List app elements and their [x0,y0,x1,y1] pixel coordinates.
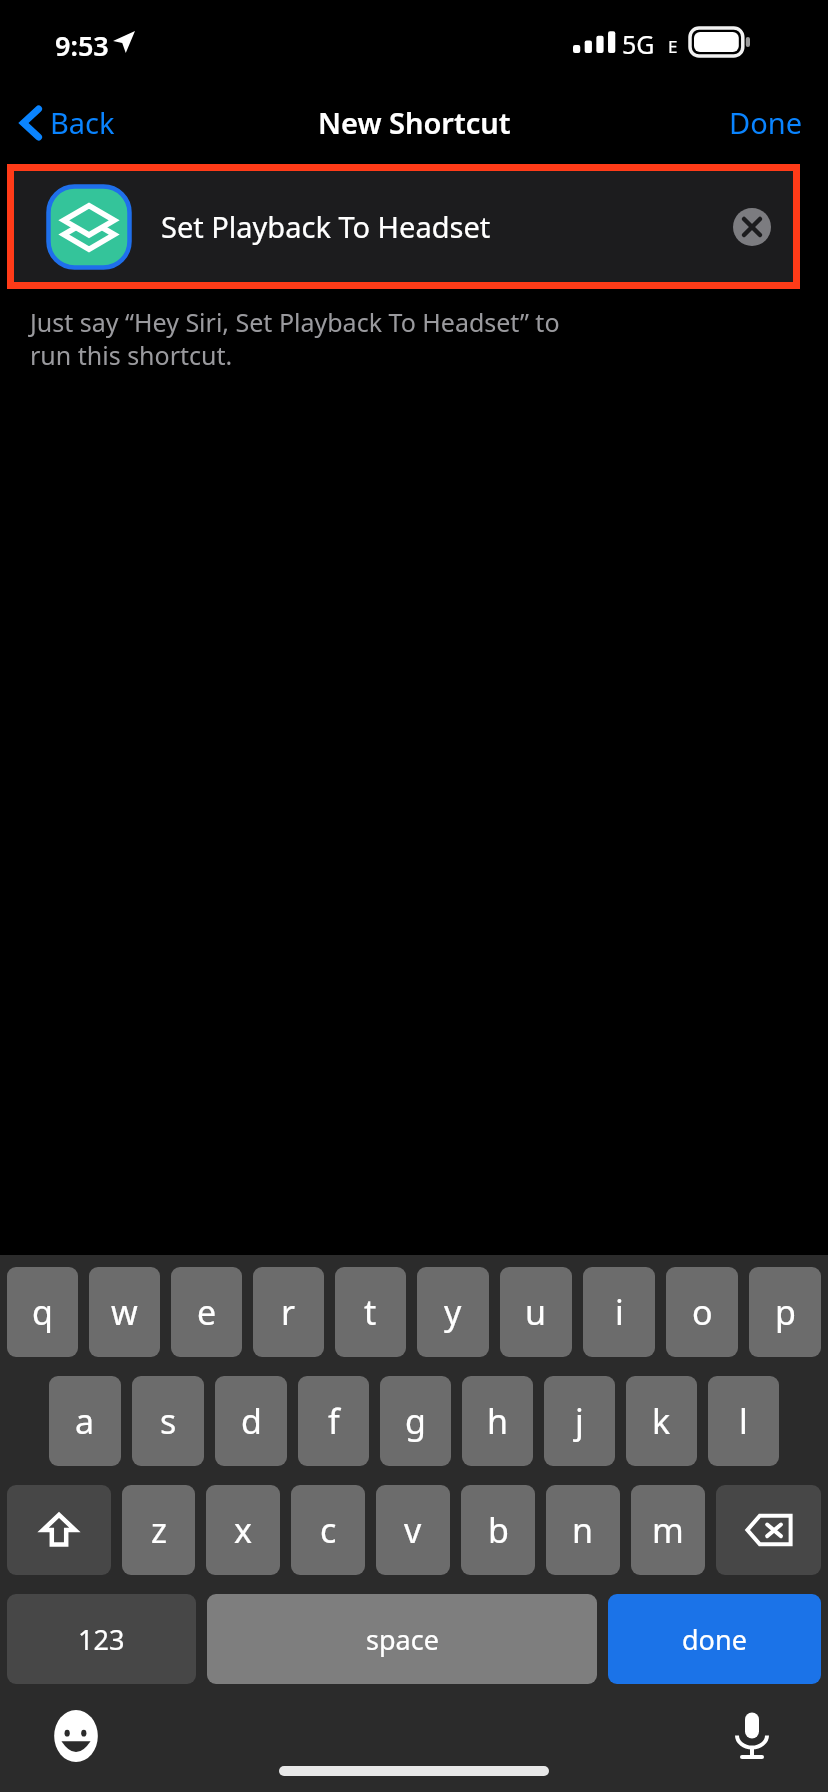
button[interactable]: a [49,1376,121,1466]
button[interactable]: q [7,1267,78,1357]
button[interactable]: Done [709,97,828,148]
button[interactable]: Set Playback To Headset [14,171,793,282]
staticText: New Shortcut [318,103,511,142]
button[interactable]: p [749,1267,821,1357]
staticText: s [160,1398,177,1444]
staticText: Just say “Hey Siri, Set Playback To Head… [30,305,560,372]
button[interactable]: w [89,1267,160,1357]
staticText: o [692,1289,713,1335]
staticText: x [234,1507,252,1553]
staticText: j [575,1398,584,1444]
button[interactable]: Back [0,97,129,148]
staticText: Back [50,103,115,142]
button[interactable]: t [335,1267,406,1357]
button[interactable]: Clear text [733,208,771,246]
button[interactable]: d [215,1376,287,1466]
staticText: done [682,1621,747,1658]
button[interactable]: m [631,1485,705,1575]
button[interactable]: s [132,1376,204,1466]
staticText: l [739,1398,748,1444]
staticText: 123 [78,1621,125,1658]
staticText: c [320,1507,337,1553]
button[interactable]: l [708,1376,779,1466]
staticText: E [668,35,678,58]
staticText: g [405,1398,426,1444]
button[interactable]: c [291,1485,365,1575]
staticText: h [487,1398,509,1444]
staticText: i [615,1289,624,1335]
button[interactable]: done [608,1594,821,1684]
button[interactable]: 123 [7,1594,196,1684]
staticText: m [652,1507,684,1553]
staticText: 9:53 [55,27,109,64]
button[interactable]: Emoji keyboard [48,1708,104,1764]
staticText: Done [729,103,802,142]
staticText: 5G [622,27,655,61]
button[interactable]: g [380,1376,451,1466]
button[interactable]: n [546,1485,620,1575]
button[interactable]: u [500,1267,572,1357]
button[interactable]: Dictation [724,1708,780,1764]
staticText: w [111,1289,138,1335]
staticText: n [572,1507,594,1553]
button[interactable]: i [583,1267,655,1357]
staticText: t [364,1289,377,1335]
staticText: u [525,1289,547,1335]
staticText: y [444,1289,462,1335]
staticText: d [241,1398,262,1444]
button[interactable]: r [253,1267,324,1357]
staticText: f [328,1398,340,1444]
staticText: r [281,1289,296,1335]
staticText: v [404,1507,422,1553]
button[interactable]: Shift [7,1485,111,1575]
button[interactable]: y [417,1267,489,1357]
button[interactable]: f [298,1376,369,1466]
button[interactable]: k [626,1376,697,1466]
button[interactable]: x [206,1485,280,1575]
staticText: k [652,1398,671,1444]
button[interactable]: j [544,1376,615,1466]
button[interactable]: Backspace [716,1485,821,1575]
staticText: q [32,1289,53,1335]
button[interactable]: e [171,1267,242,1357]
button[interactable]: o [666,1267,738,1357]
staticText: b [488,1507,509,1553]
staticText: e [197,1289,217,1335]
button[interactable]: h [462,1376,533,1466]
staticText: z [151,1507,167,1553]
button[interactable]: v [376,1485,450,1575]
button[interactable]: b [461,1485,535,1575]
button[interactable]: z [122,1485,195,1575]
staticText: a [75,1398,95,1444]
staticText: space [366,1621,439,1658]
staticText: Set Playback To Headset [161,207,733,246]
staticText: p [775,1289,796,1335]
button[interactable]: space [207,1594,597,1684]
